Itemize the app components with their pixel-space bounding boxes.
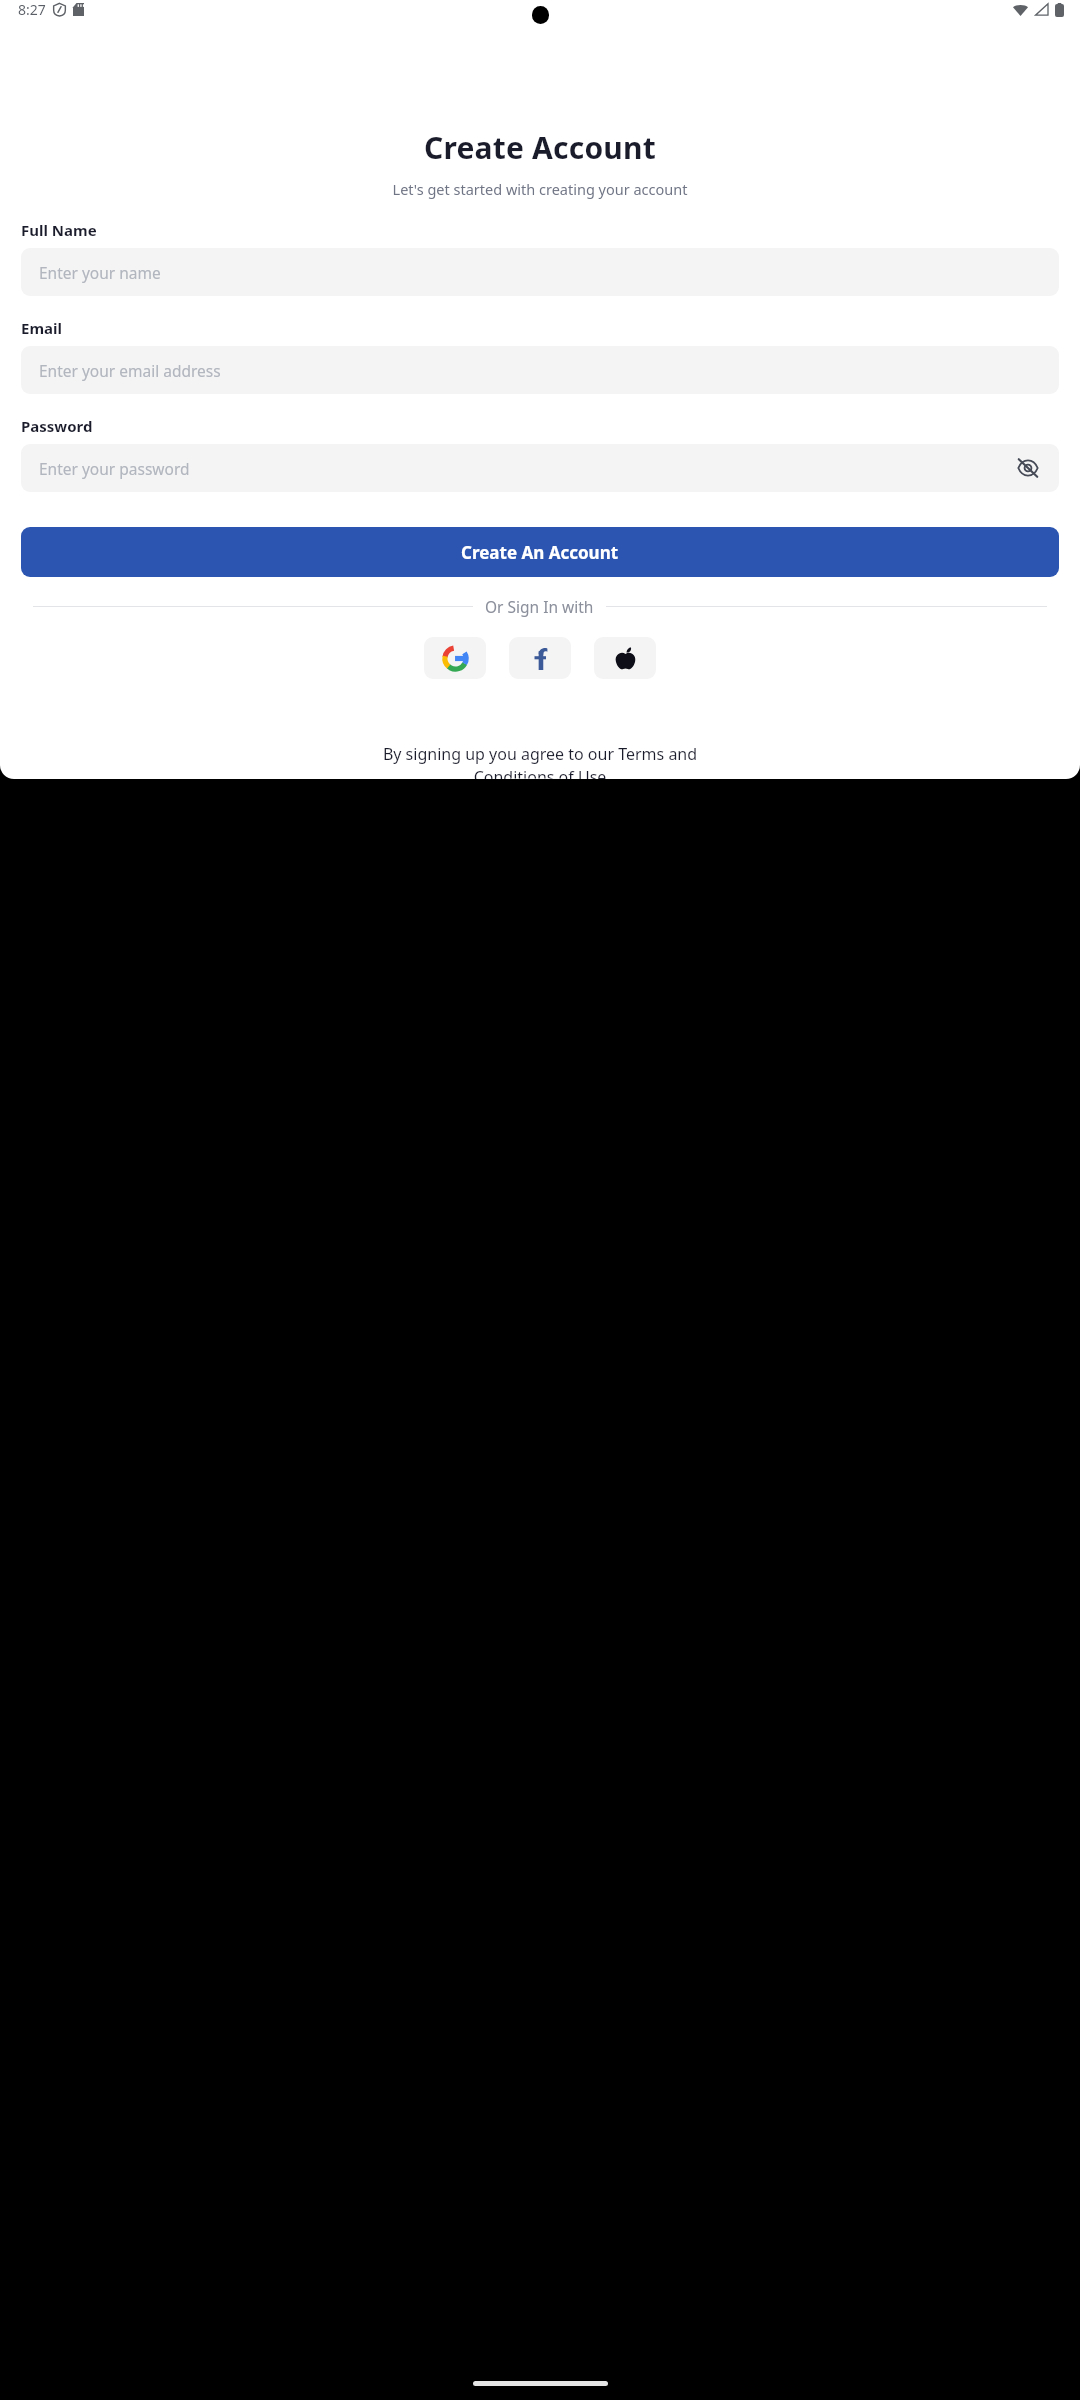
staticText: Create An Account [461,541,619,564]
staticText: Let's get started with creating your acc… [0,179,1080,199]
button[interactable]: Create An Account [21,527,1059,577]
staticText: Enter your email address [39,360,1041,381]
button[interactable]: Enter your email address [21,346,1059,394]
staticText: Email [21,318,62,338]
button[interactable]: Sign in with Facebook [509,637,571,679]
button[interactable]: Enter your password [21,444,1059,492]
staticText: Password [21,416,93,436]
button[interactable]: Enter your name [21,248,1059,296]
button[interactable]: Sign in with Apple [594,637,656,679]
staticText: Enter your password [39,458,1015,479]
staticText: Create Account [0,127,1080,168]
staticText: Full Name [21,220,97,240]
staticText: Enter your name [39,262,1041,283]
staticText: Or Sign In with [485,596,594,617]
button[interactable]: By signing up you agree to our Terms and… [24,743,1056,779]
staticText: 8:27 [18,0,46,19]
button[interactable]: Sign in with Google [424,637,486,679]
button[interactable]: Show password [1015,455,1041,481]
